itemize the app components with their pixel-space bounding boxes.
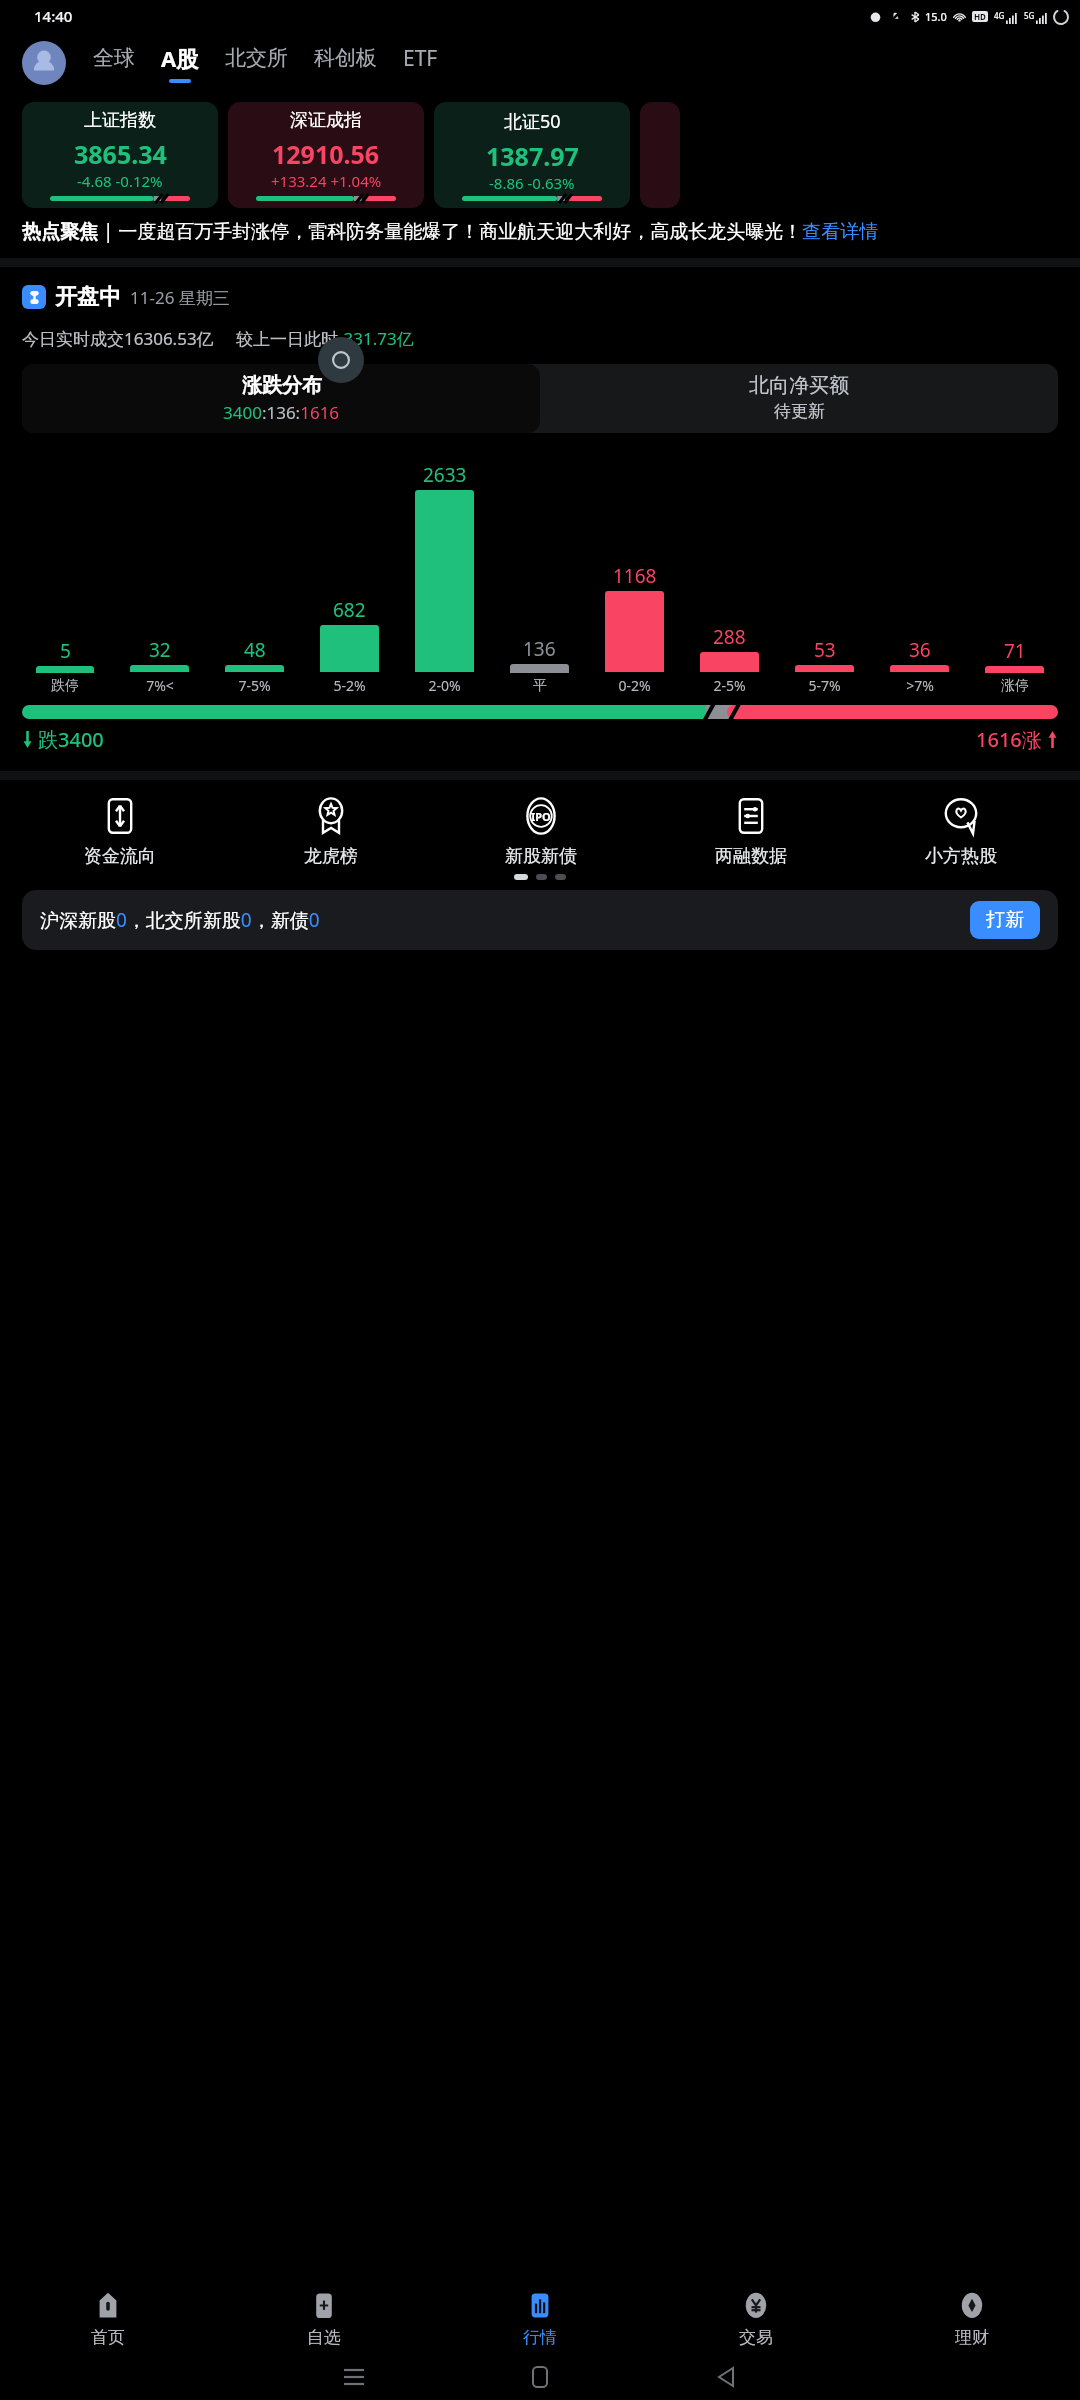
button[interactable]: 上证指数 [22,102,218,208]
button[interactable]: 深证成指 [228,102,424,208]
staticText: 48 [244,637,266,663]
staticText: 开盘中 [55,283,121,311]
button[interactable]: 小方热股 [856,794,1066,868]
staticText: 沪深新股0，北交所新股0，新债0 [40,907,320,933]
button[interactable]: 自选 [216,2289,432,2348]
button[interactable]: 行情 [432,2289,648,2348]
staticText: HD [974,11,986,22]
button[interactable]: 北向净买额 [540,364,1058,431]
button[interactable]: 理财 [864,2289,1080,2348]
button[interactable]: ETF [403,44,438,83]
staticText: 深证成指 [290,109,362,132]
button[interactable]: 北证50 [434,102,630,208]
staticText: 15.0 [925,9,947,24]
button[interactable]: 两融数据 [646,794,856,868]
button[interactable]: 交易 [648,2289,864,2348]
button[interactable]: 热点聚焦 | 一度超百万手封涨停，雷科防务量能爆了！商业航天迎大利好，高成长龙头… [22,218,1058,244]
button[interactable]: 龙虎榜 [225,794,436,868]
staticText: 7%< [146,676,174,695]
staticText: 36 [909,637,931,663]
staticText: 5-7% [808,676,841,695]
button[interactable]: Customer service [318,337,364,383]
staticText: 北交所 [225,45,288,71]
staticText: 涨停 [1001,677,1029,695]
staticText: 5 [60,638,71,664]
staticText: 11-26 星期三 [130,286,230,309]
staticText: 自选 [307,2327,341,2348]
staticText: 北证50 [504,109,561,134]
staticText: 涨跌分布 [242,373,322,398]
staticText: 龙虎榜 [304,845,358,868]
button[interactable]: IPO [436,794,646,868]
staticText: 交易 [739,2327,773,2348]
staticText: 今日实时成交16306.53亿 [22,327,214,350]
button[interactable]: Back [633,2368,819,2386]
staticText: 3400:136:1616 [223,401,340,424]
staticText: +133.24 +1.04% [271,171,382,191]
button[interactable]: 53 [777,637,872,695]
staticText: 平 [533,677,547,695]
button[interactable]: 北交所 [225,45,288,81]
button[interactable]: Home [447,2367,633,2387]
staticText: 136 [523,636,556,662]
button[interactable]: 涨跌分布 [22,364,540,433]
button[interactable]: A股 [161,43,199,83]
staticText: 全球 [93,45,135,71]
button[interactable]: 71 [967,638,1062,695]
staticText: 53 [814,637,836,663]
staticText: 两融数据 [715,845,787,868]
staticText: 71 [1004,638,1026,664]
button[interactable]: Profile [22,41,66,85]
staticText: 跌3400 [38,726,104,753]
button[interactable]: 136 [492,636,587,695]
button[interactable]: 48 [207,637,302,695]
button[interactable]: 36 [872,637,967,695]
button[interactable]: 科创板 [314,45,377,81]
staticText: 行情 [523,2327,557,2348]
staticText: 首页 [91,2327,125,2348]
staticText: 0-2% [618,676,651,695]
button[interactable]: 资金流向 [14,794,225,868]
staticText: 4G [994,10,1005,21]
staticText: 288 [713,624,746,650]
button[interactable]: 全球 [93,45,135,81]
staticText: 较上一日此时-331.73亿 [236,327,414,350]
staticText: 科创板 [314,45,377,71]
button[interactable]: 32 [112,637,207,695]
staticText: 1168 [613,563,657,589]
staticText: 14:40 [34,6,73,26]
staticText: 3865.34 [74,137,167,171]
staticText: 5G [1024,10,1035,21]
button[interactable]: 1168 [587,563,682,695]
staticText: 北向净买额 [749,373,849,398]
staticText: 5-2% [333,676,366,695]
button[interactable]: 682 [302,597,397,695]
button[interactable]: 打新 [970,901,1040,939]
staticText: 待更新 [774,401,825,422]
button[interactable]: 首页 [0,2289,216,2348]
button[interactable]: 2633 [397,462,492,695]
staticText: -8.86 -0.63% [489,173,575,193]
staticText: 682 [333,597,366,623]
staticText: 1387.97 [486,139,579,173]
button[interactable] [640,102,680,208]
staticText: >7% [906,676,934,695]
staticText: 32 [149,637,171,663]
staticText: 热点聚焦 | 一度超百万手封涨停，雷科防务量能爆了！商业航天迎大利好，高成长龙头… [22,218,879,244]
staticText: 跌停 [51,677,79,695]
staticText: 理财 [955,2327,989,2348]
staticText: 上证指数 [84,109,156,132]
button[interactable]: 5 [18,638,112,695]
staticText: 12910.56 [272,137,380,171]
staticText: 2-0% [428,676,461,695]
staticText: 1616涨 [976,726,1042,753]
staticText: 2633 [423,462,467,488]
staticText: 小方热股 [925,845,997,868]
button[interactable]: 288 [682,624,777,695]
staticText: ETF [403,44,438,73]
staticText: 2-5% [713,676,746,695]
staticText: -4.68 -0.12% [77,171,163,191]
button[interactable]: Recents [261,2370,447,2384]
staticText: 新股新债 [505,845,577,868]
button[interactable]: 沪深新股0，北交所新股0，新债0 [22,890,1058,950]
